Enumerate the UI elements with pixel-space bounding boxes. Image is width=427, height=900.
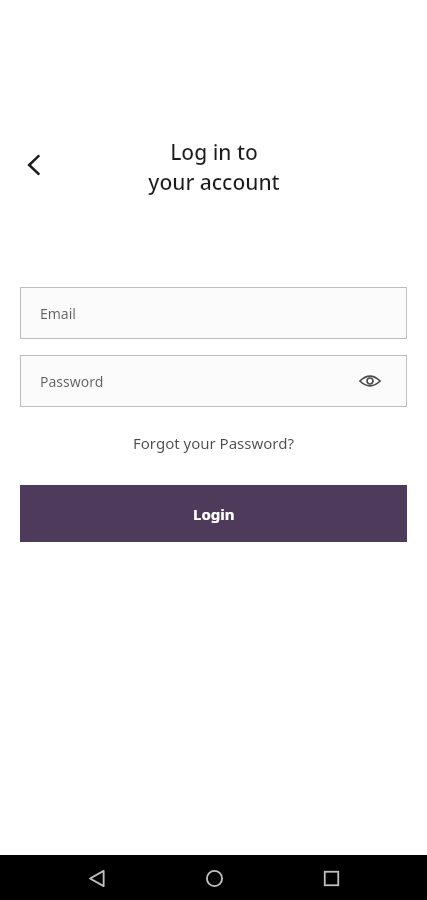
button[interactable]: Back — [12, 143, 56, 187]
staticText: Email — [40, 304, 76, 323]
button[interactable]: Show password — [353, 364, 387, 398]
button[interactable]: Password — [20, 355, 407, 407]
staticText: Forgot your Password? — [133, 433, 294, 453]
button[interactable]: Home — [192, 856, 236, 900]
button[interactable]: Email — [20, 287, 407, 339]
staticText: Log in to your account — [148, 138, 280, 196]
button[interactable]: Back — [74, 856, 118, 900]
staticText: Password — [40, 372, 104, 391]
staticText: Login — [193, 504, 235, 524]
button[interactable]: Login — [20, 485, 407, 542]
button[interactable]: Recent apps — [309, 856, 353, 900]
button[interactable]: Forgot your Password? — [125, 429, 302, 457]
